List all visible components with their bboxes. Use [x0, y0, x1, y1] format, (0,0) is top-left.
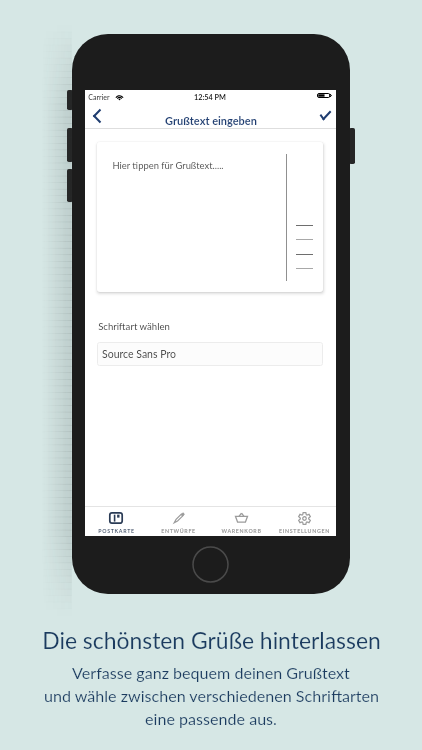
button[interactable]: POSTKARTE: [85, 507, 147, 536]
staticText: ENTWÜRFE: [161, 528, 196, 534]
staticText: Die schönsten Grüße hinterlassen: [42, 626, 381, 653]
button[interactable]: Source Sans Pro: [97, 342, 323, 366]
staticText: EINSTELLUNGEN: [279, 528, 330, 534]
staticText: und wähle zwischen verschiedenen Schrift…: [44, 686, 379, 705]
staticText: Source Sans Pro: [102, 348, 176, 361]
staticText: WARENKORB: [221, 528, 262, 534]
button[interactable]: Hier tippen für Grußtext.....: [97, 142, 323, 292]
staticText: Verfasse ganz bequem deinen Grußtext: [72, 663, 350, 682]
staticText: Carrier: [88, 93, 110, 101]
staticText: Grußtext eingeben: [165, 114, 257, 127]
button[interactable]: Fertig: [314, 108, 336, 128]
button[interactable]: WARENKORB: [210, 507, 273, 536]
button[interactable]: EINSTELLUNGEN: [273, 507, 336, 536]
staticText: eine passende aus.: [145, 709, 277, 728]
staticText: POSTKARTE: [98, 528, 135, 534]
staticText: Schriftart wählen: [98, 321, 170, 333]
button[interactable]: Zurück: [86, 108, 106, 128]
button[interactable]: ENTWÜRFE: [147, 507, 210, 536]
staticText: 12:54 PM: [194, 93, 226, 102]
staticText: Hier tippen für Grußtext.....: [112, 160, 224, 171]
